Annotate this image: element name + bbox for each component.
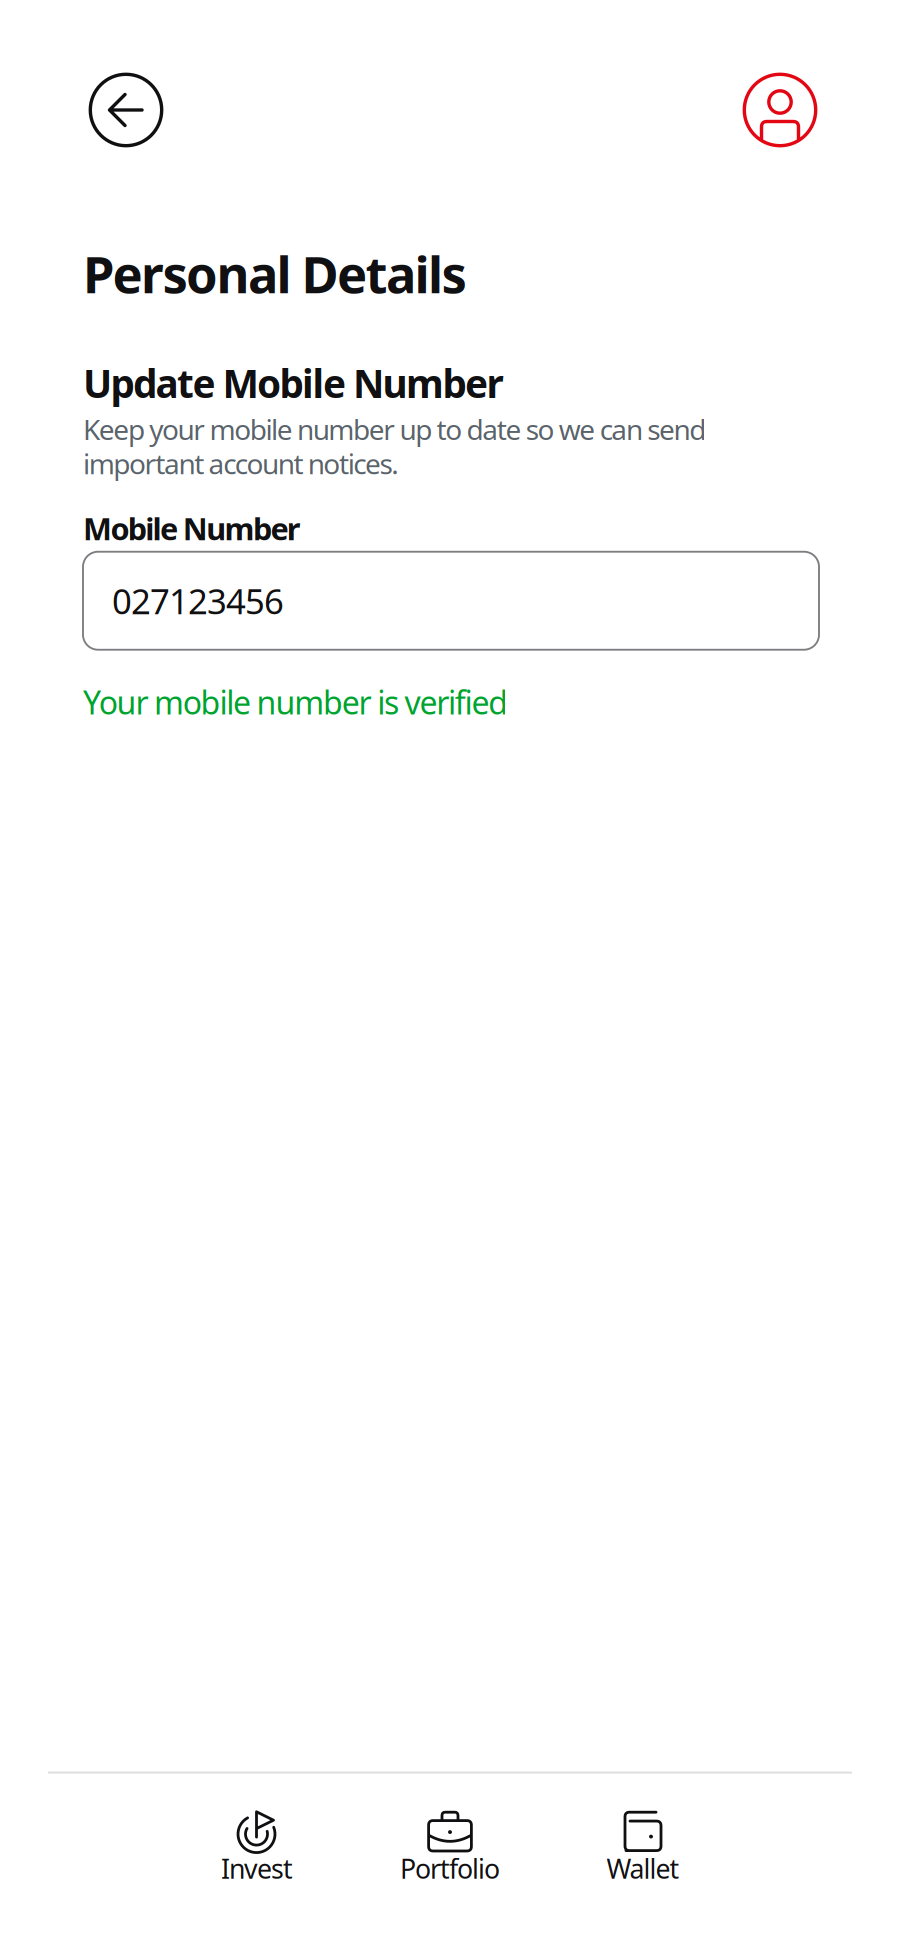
button[interactable]: Invest — [160, 1794, 353, 1886]
button[interactable]: Back — [88, 72, 164, 148]
staticText: 027123456 — [112, 578, 284, 624]
staticText: Portfolio — [400, 1851, 500, 1886]
staticText: Mobile Number — [83, 508, 301, 549]
staticText: Wallet — [606, 1851, 679, 1886]
staticText: Update Mobile Number — [83, 357, 503, 409]
staticText: Your mobile number is verified — [83, 681, 508, 723]
staticText: Personal Details — [83, 240, 466, 307]
button[interactable]: Wallet — [546, 1794, 739, 1886]
staticText: Keep your mobile number up to date so we… — [83, 411, 706, 482]
staticText: Invest — [221, 1851, 293, 1886]
button[interactable]: Profile — [742, 72, 818, 148]
button[interactable]: Portfolio — [353, 1794, 546, 1886]
